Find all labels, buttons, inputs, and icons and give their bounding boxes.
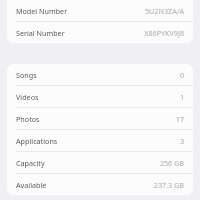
staticText: Applications xyxy=(16,136,58,146)
staticText: Photos xyxy=(16,114,40,124)
staticText: 256 GB xyxy=(159,158,184,168)
staticText: 1 xyxy=(179,92,184,102)
button[interactable]: Songs xyxy=(7,64,193,85)
button[interactable]: Capacity xyxy=(7,152,193,173)
button[interactable]: Model Number xyxy=(7,0,193,21)
staticText: Capacity xyxy=(16,158,45,168)
staticText: 5U2N3ZA/A xyxy=(144,6,184,16)
button[interactable]: Photos xyxy=(7,108,193,129)
button[interactable]: Applications xyxy=(7,130,193,151)
staticText: Available xyxy=(16,180,47,190)
staticText: Videos xyxy=(16,92,39,102)
button[interactable]: Serial Number xyxy=(7,22,193,43)
staticText: 237.3 GB xyxy=(153,180,184,190)
staticText: 17 xyxy=(175,114,184,124)
button[interactable]: Videos xyxy=(7,86,193,107)
button[interactable]: Available xyxy=(7,174,193,195)
staticText: Model Number xyxy=(16,6,68,16)
staticText: 0 xyxy=(179,70,184,80)
staticText: Songs xyxy=(16,70,37,80)
staticText: Serial Number xyxy=(16,28,65,38)
staticText: 3 xyxy=(179,136,184,146)
staticText: X86PYKV9J8 xyxy=(144,28,184,38)
